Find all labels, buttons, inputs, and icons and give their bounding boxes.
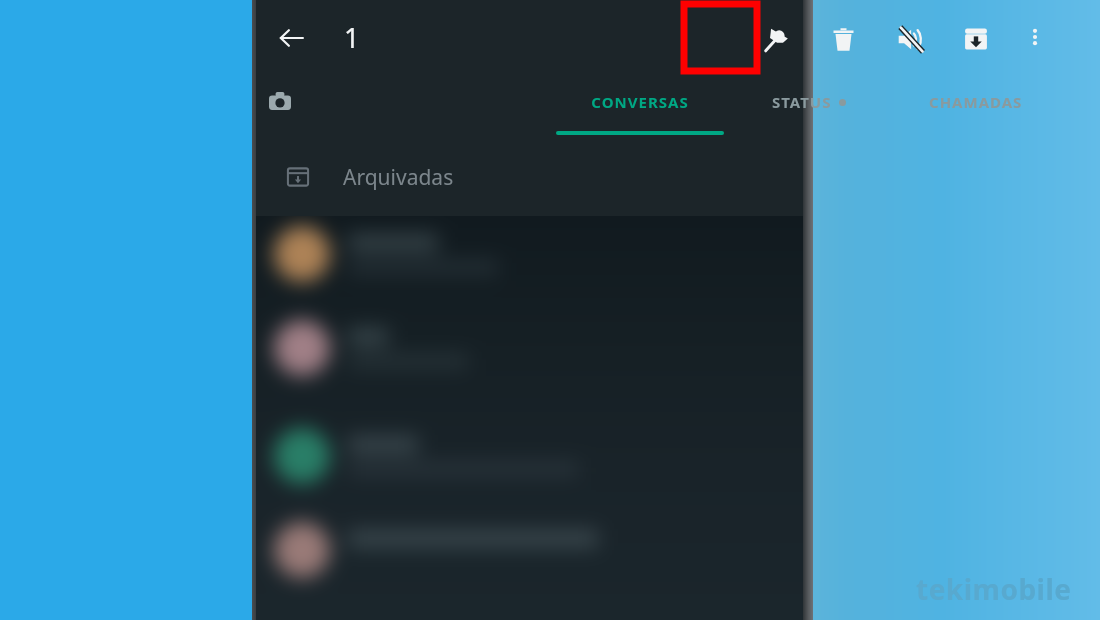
button[interactable]: STATUS (734, 76, 884, 138)
button[interactable]: Back (268, 14, 316, 62)
button[interactable]: CONVERSAS (548, 76, 732, 138)
button[interactable]: Arquivadas (256, 138, 803, 216)
button[interactable]: Camera (258, 80, 302, 124)
button[interactable]: Mute (883, 13, 935, 65)
button[interactable]: CHAMADAS (892, 76, 1060, 138)
staticText: tekimobile (916, 570, 1072, 608)
staticText: CONVERSAS (591, 92, 689, 112)
button[interactable]: Archive (950, 13, 1002, 65)
staticText: Arquivadas (343, 163, 454, 192)
staticText: 1 (344, 19, 360, 56)
button[interactable]: Delete (817, 13, 869, 65)
staticText: CHAMADAS (929, 92, 1023, 112)
staticText: STATUS (772, 92, 832, 112)
button[interactable]: Pin (750, 13, 802, 65)
button[interactable]: More options (1012, 14, 1058, 60)
